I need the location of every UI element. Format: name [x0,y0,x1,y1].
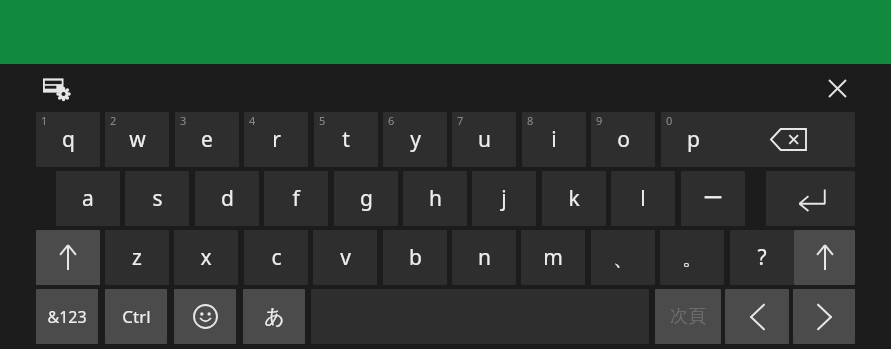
staticText: s [152,184,163,213]
staticText: t [342,125,350,154]
button[interactable]: ー [681,171,745,226]
staticText: p [687,125,700,154]
staticText: g [360,184,373,213]
button[interactable]: h [403,171,467,226]
staticText: ー [703,186,723,211]
button[interactable]: 7 [452,112,516,167]
button[interactable]: &123 [36,289,98,344]
button[interactable]: Backspace [723,112,855,167]
staticText: Ctrl [122,305,151,328]
staticText: 5 [319,113,326,128]
staticText: q [62,125,75,154]
button[interactable]: 5 [314,112,378,167]
button[interactable]: 6 [383,112,447,167]
staticText: あ [264,304,285,329]
button[interactable]: 2 [105,112,169,167]
staticText: u [478,125,491,154]
button[interactable]: 9 [591,112,655,167]
button[interactable]: Shift [36,230,100,285]
staticText: 6 [388,113,395,128]
button[interactable]: l [611,171,675,226]
staticText: ? [757,243,767,272]
staticText: b [409,243,422,272]
button[interactable]: v [313,230,377,285]
button[interactable]: d [195,171,259,226]
staticText: x [200,243,212,272]
button[interactable]: j [472,171,536,226]
button[interactable]: x [174,230,238,285]
button[interactable]: 4 [244,112,308,167]
button[interactable]: あ [243,289,305,344]
button[interactable]: m [521,230,585,285]
staticText: 8 [527,113,534,128]
button[interactable]: Previous [725,289,789,344]
staticText: y [410,125,421,154]
staticText: 7 [457,113,464,128]
staticText: c [271,243,282,272]
button[interactable]: Emoji [174,289,236,344]
button[interactable]: Shift [794,230,855,285]
button[interactable]: b [383,230,447,285]
button[interactable]: a [56,171,120,226]
staticText: 1 [41,113,48,128]
staticText: 次頁 [670,305,706,328]
button[interactable]: Close [817,68,857,108]
button[interactable]: 、 [591,230,655,285]
staticText: o [617,125,630,154]
staticText: a [82,184,94,213]
staticText: n [478,243,491,272]
staticText: i [551,125,557,154]
staticText: 0 [666,113,673,128]
button[interactable]: Keyboard settings [38,73,74,103]
staticText: h [429,184,442,213]
button[interactable]: 1 [36,112,100,167]
staticText: 4 [249,113,256,128]
staticText: e [201,125,213,154]
button[interactable]: Enter [766,171,855,226]
staticText: m [543,243,563,272]
button[interactable]: 8 [522,112,586,167]
staticText: k [568,184,580,213]
button[interactable]: f [264,171,328,226]
button[interactable]: n [452,230,516,285]
staticText: d [221,184,234,213]
button[interactable]: 。 [660,230,724,285]
button[interactable]: 0 [661,112,725,167]
button[interactable]: Ctrl [105,289,167,344]
staticText: 3 [180,113,187,128]
staticText: w [129,125,146,154]
button[interactable]: 次頁 [655,289,721,344]
staticText: 9 [596,113,603,128]
button[interactable]: 3 [175,112,239,167]
staticText: r [272,125,281,154]
button[interactable]: s [125,171,189,226]
staticText: j [501,184,507,213]
staticText: z [132,243,142,272]
staticText: 。 [682,245,703,271]
button[interactable]: z [105,230,169,285]
button[interactable]: Next [793,289,855,344]
button[interactable]: ? [730,230,794,285]
staticText: v [340,243,351,272]
staticText: &123 [47,306,87,328]
staticText: 2 [110,113,117,128]
staticText: l [640,184,646,213]
button[interactable]: g [334,171,398,226]
staticText: f [292,184,300,213]
button[interactable]: k [542,171,606,226]
button[interactable]: c [244,230,308,285]
staticText: 、 [613,245,634,271]
